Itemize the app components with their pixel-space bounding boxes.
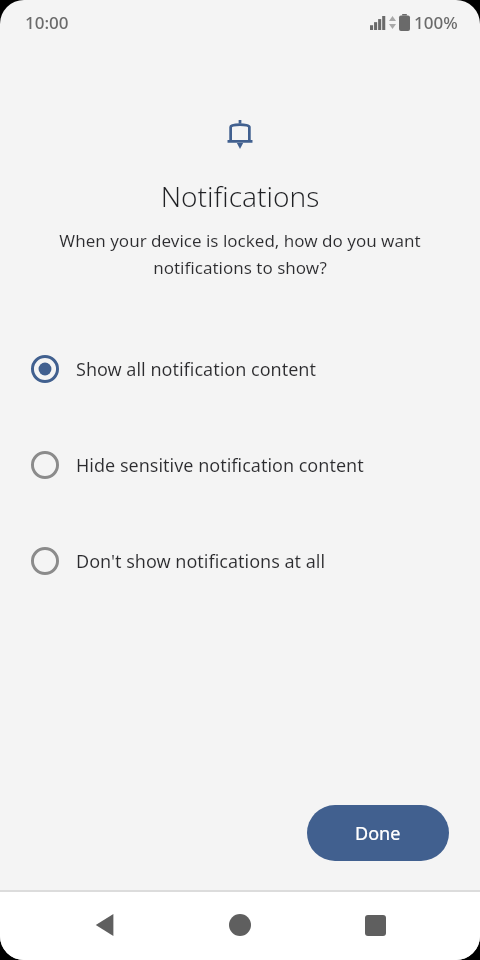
- staticText: Don't show notifications at all: [76, 549, 326, 574]
- staticText: 10:00: [25, 11, 69, 34]
- staticText: Hide sensitive notification content: [76, 453, 364, 478]
- button[interactable]: Done: [307, 805, 449, 861]
- button[interactable]: Hide sensitive notification content: [0, 417, 480, 513]
- button[interactable]: Home: [210, 895, 270, 955]
- button[interactable]: Show all notification content: [0, 321, 480, 417]
- button[interactable]: Back: [75, 895, 135, 955]
- staticText: When your device is locked, how do you w…: [36, 229, 444, 279]
- staticText: 100%: [414, 11, 458, 34]
- staticText: Done: [355, 821, 401, 846]
- staticText: Show all notification content: [76, 357, 316, 382]
- button[interactable]: Recent apps: [345, 895, 405, 955]
- staticText: Notifications: [0, 177, 480, 215]
- other: Notifications: [227, 120, 253, 149]
- button[interactable]: Don't show notifications at all: [0, 513, 480, 609]
